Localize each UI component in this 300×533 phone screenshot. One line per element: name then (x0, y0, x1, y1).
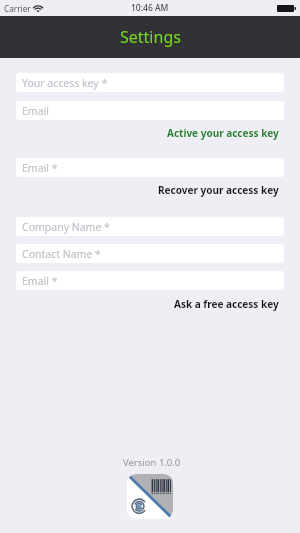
button[interactable]: Email * (16, 271, 284, 290)
other: Battery full (277, 5, 296, 12)
staticText: Email * (22, 274, 58, 288)
staticText: 10:46 AM (131, 2, 169, 14)
button[interactable]: Email (16, 101, 284, 120)
button[interactable]: Ask a free access key (174, 297, 279, 311)
button[interactable]: Company Name * (16, 217, 284, 236)
staticText: Contact Name * (22, 247, 101, 261)
staticText: Recover your access key (158, 183, 279, 197)
staticText: Version 1.0.0 (123, 456, 181, 469)
staticText: Your access key * (22, 76, 108, 90)
staticText: Settings (120, 26, 181, 48)
staticText: Carrier (4, 3, 31, 14)
staticText: Ask a free access key (174, 297, 279, 311)
button[interactable]: Contact Name * (16, 244, 284, 263)
other: Wi-Fi signal (34, 5, 42, 12)
staticText: Email (22, 104, 49, 118)
button[interactable]: App logo (127, 474, 173, 519)
staticText: Company Name * (22, 220, 110, 234)
staticText: Email * (22, 161, 58, 175)
button[interactable]: Your access key * (16, 73, 284, 92)
button[interactable]: Active your access key (167, 126, 279, 140)
staticText: Active your access key (167, 126, 279, 140)
button[interactable]: Email * (16, 158, 284, 177)
button[interactable]: Recover your access key (158, 183, 279, 197)
